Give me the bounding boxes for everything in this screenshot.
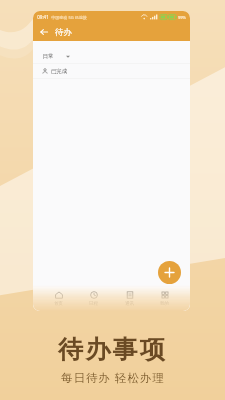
- button[interactable]: 我的: [154, 289, 175, 309]
- staticText: 中国移动 5G 已连接: [51, 15, 87, 20]
- staticText: 待办事项: [58, 334, 167, 365]
- button[interactable]: 首页: [48, 289, 69, 309]
- button[interactable]: Add todo: [158, 261, 181, 284]
- staticText: 通讯: [125, 301, 134, 307]
- staticText: 我的: [160, 301, 169, 307]
- button[interactable]: Back: [37, 25, 51, 39]
- button[interactable]: 日常: [33, 49, 190, 63]
- button[interactable]: 通讯: [119, 289, 140, 309]
- staticText: 已完成: [51, 68, 67, 75]
- staticText: 日常: [42, 53, 54, 60]
- staticText: 09:41: [37, 14, 49, 20]
- staticText: 待办: [55, 27, 72, 38]
- button[interactable]: 日程: [83, 289, 104, 309]
- staticText: 首页: [54, 301, 63, 307]
- staticText: 每日待办 轻松办理: [61, 370, 165, 386]
- staticText: 日程: [89, 301, 98, 307]
- button[interactable]: 已完成: [33, 64, 190, 78]
- staticText: 99%: [178, 15, 186, 20]
